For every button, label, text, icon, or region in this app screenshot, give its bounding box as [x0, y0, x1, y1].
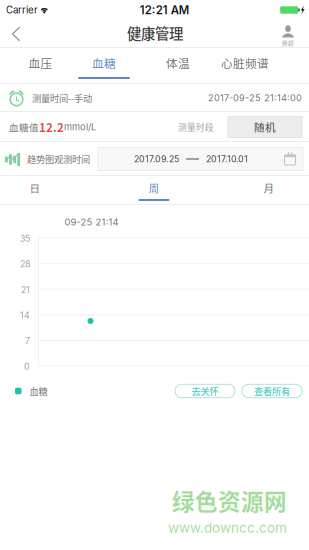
- staticText: 14: [20, 310, 30, 321]
- button[interactable]: 随机: [228, 116, 302, 137]
- staticText: 血压: [28, 55, 52, 71]
- staticText: 心脏频谱: [221, 55, 269, 71]
- staticText: 12:21 AM: [140, 3, 190, 17]
- staticText: 月: [263, 180, 274, 196]
- staticText: 测量时间--手动: [32, 91, 92, 105]
- staticText: 周: [148, 180, 159, 196]
- staticText: 趋势图观测时间: [27, 152, 90, 166]
- button[interactable]: 日: [10, 176, 60, 205]
- button[interactable]: 周: [129, 176, 179, 205]
- staticText: 健康管理: [127, 23, 183, 43]
- button[interactable]: 心脏频谱: [213, 48, 277, 84]
- staticText: 7: [25, 336, 30, 346]
- button[interactable]: 2017.09.25: [98, 147, 303, 170]
- staticText: 0: [24, 361, 30, 372]
- button[interactable]: 薛超: [271, 20, 305, 48]
- staticText: 薛超: [282, 39, 294, 47]
- staticText: 2017.10.01: [206, 154, 248, 164]
- staticText: www.downcc.com: [168, 520, 287, 536]
- staticText: 测量时段: [178, 121, 214, 133]
- staticText: mmol/L: [64, 121, 96, 132]
- staticText: Carrier: [6, 4, 38, 16]
- staticText: 12.2: [39, 119, 64, 135]
- button[interactable]: 体温: [146, 48, 210, 84]
- button[interactable]: 月: [244, 176, 294, 205]
- staticText: 血糖: [29, 384, 47, 398]
- staticText: 查看所有: [254, 384, 290, 398]
- staticText: 2017-09-25 21:14:00: [208, 92, 302, 103]
- staticText: 去关怀: [191, 384, 218, 398]
- button[interactable]: 返回: [2, 20, 30, 48]
- button[interactable]: 血压: [8, 48, 72, 84]
- button[interactable]: 去关怀: [175, 384, 235, 398]
- staticText: 2017.09.25: [134, 154, 179, 164]
- staticText: 随机: [254, 119, 276, 135]
- staticText: 绿色资源网: [172, 484, 287, 517]
- staticText: 血糖: [92, 55, 116, 71]
- button[interactable]: 查看所有: [242, 384, 302, 398]
- button[interactable]: 血糖: [72, 48, 136, 84]
- staticText: 28: [20, 259, 30, 269]
- staticText: 21: [21, 284, 30, 295]
- staticText: 体温: [166, 55, 190, 71]
- staticText: 血糖值: [9, 120, 39, 134]
- staticText: 35: [20, 233, 30, 244]
- staticText: 09-25 21:14: [64, 216, 118, 228]
- staticText: 日: [29, 180, 40, 196]
